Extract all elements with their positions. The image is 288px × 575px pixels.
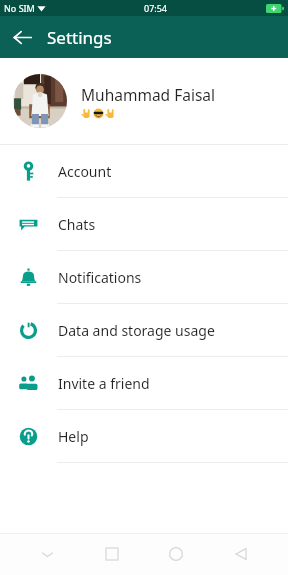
button[interactable]: Invite a friend	[0, 357, 288, 409]
staticText: Chats	[58, 215, 96, 234]
staticText: Settings	[47, 26, 112, 49]
button[interactable]: Back	[6, 21, 38, 53]
staticText: Invite a friend	[58, 374, 150, 393]
button[interactable]: Recent apps	[94, 536, 130, 572]
staticText: 07:54	[144, 2, 168, 14]
button[interactable]: Notifications	[0, 251, 288, 303]
button[interactable]: Home	[158, 536, 194, 572]
staticText: Account	[58, 162, 112, 181]
button[interactable]: Chats	[0, 198, 288, 250]
staticText: Help	[58, 427, 89, 446]
staticText: Data and storage usage	[58, 321, 215, 340]
button[interactable]: Back	[223, 536, 259, 572]
button[interactable]: Help	[0, 410, 288, 462]
staticText: Muhammad Faisal	[81, 84, 216, 105]
button[interactable]: Account	[0, 145, 288, 197]
staticText: Notifications	[58, 268, 142, 287]
button[interactable]: Hide navigation bar	[29, 536, 65, 572]
staticText: No SIM	[4, 2, 35, 14]
button[interactable]: Muhammad Faisal	[0, 58, 288, 144]
button[interactable]: Data and storage usage	[0, 304, 288, 356]
